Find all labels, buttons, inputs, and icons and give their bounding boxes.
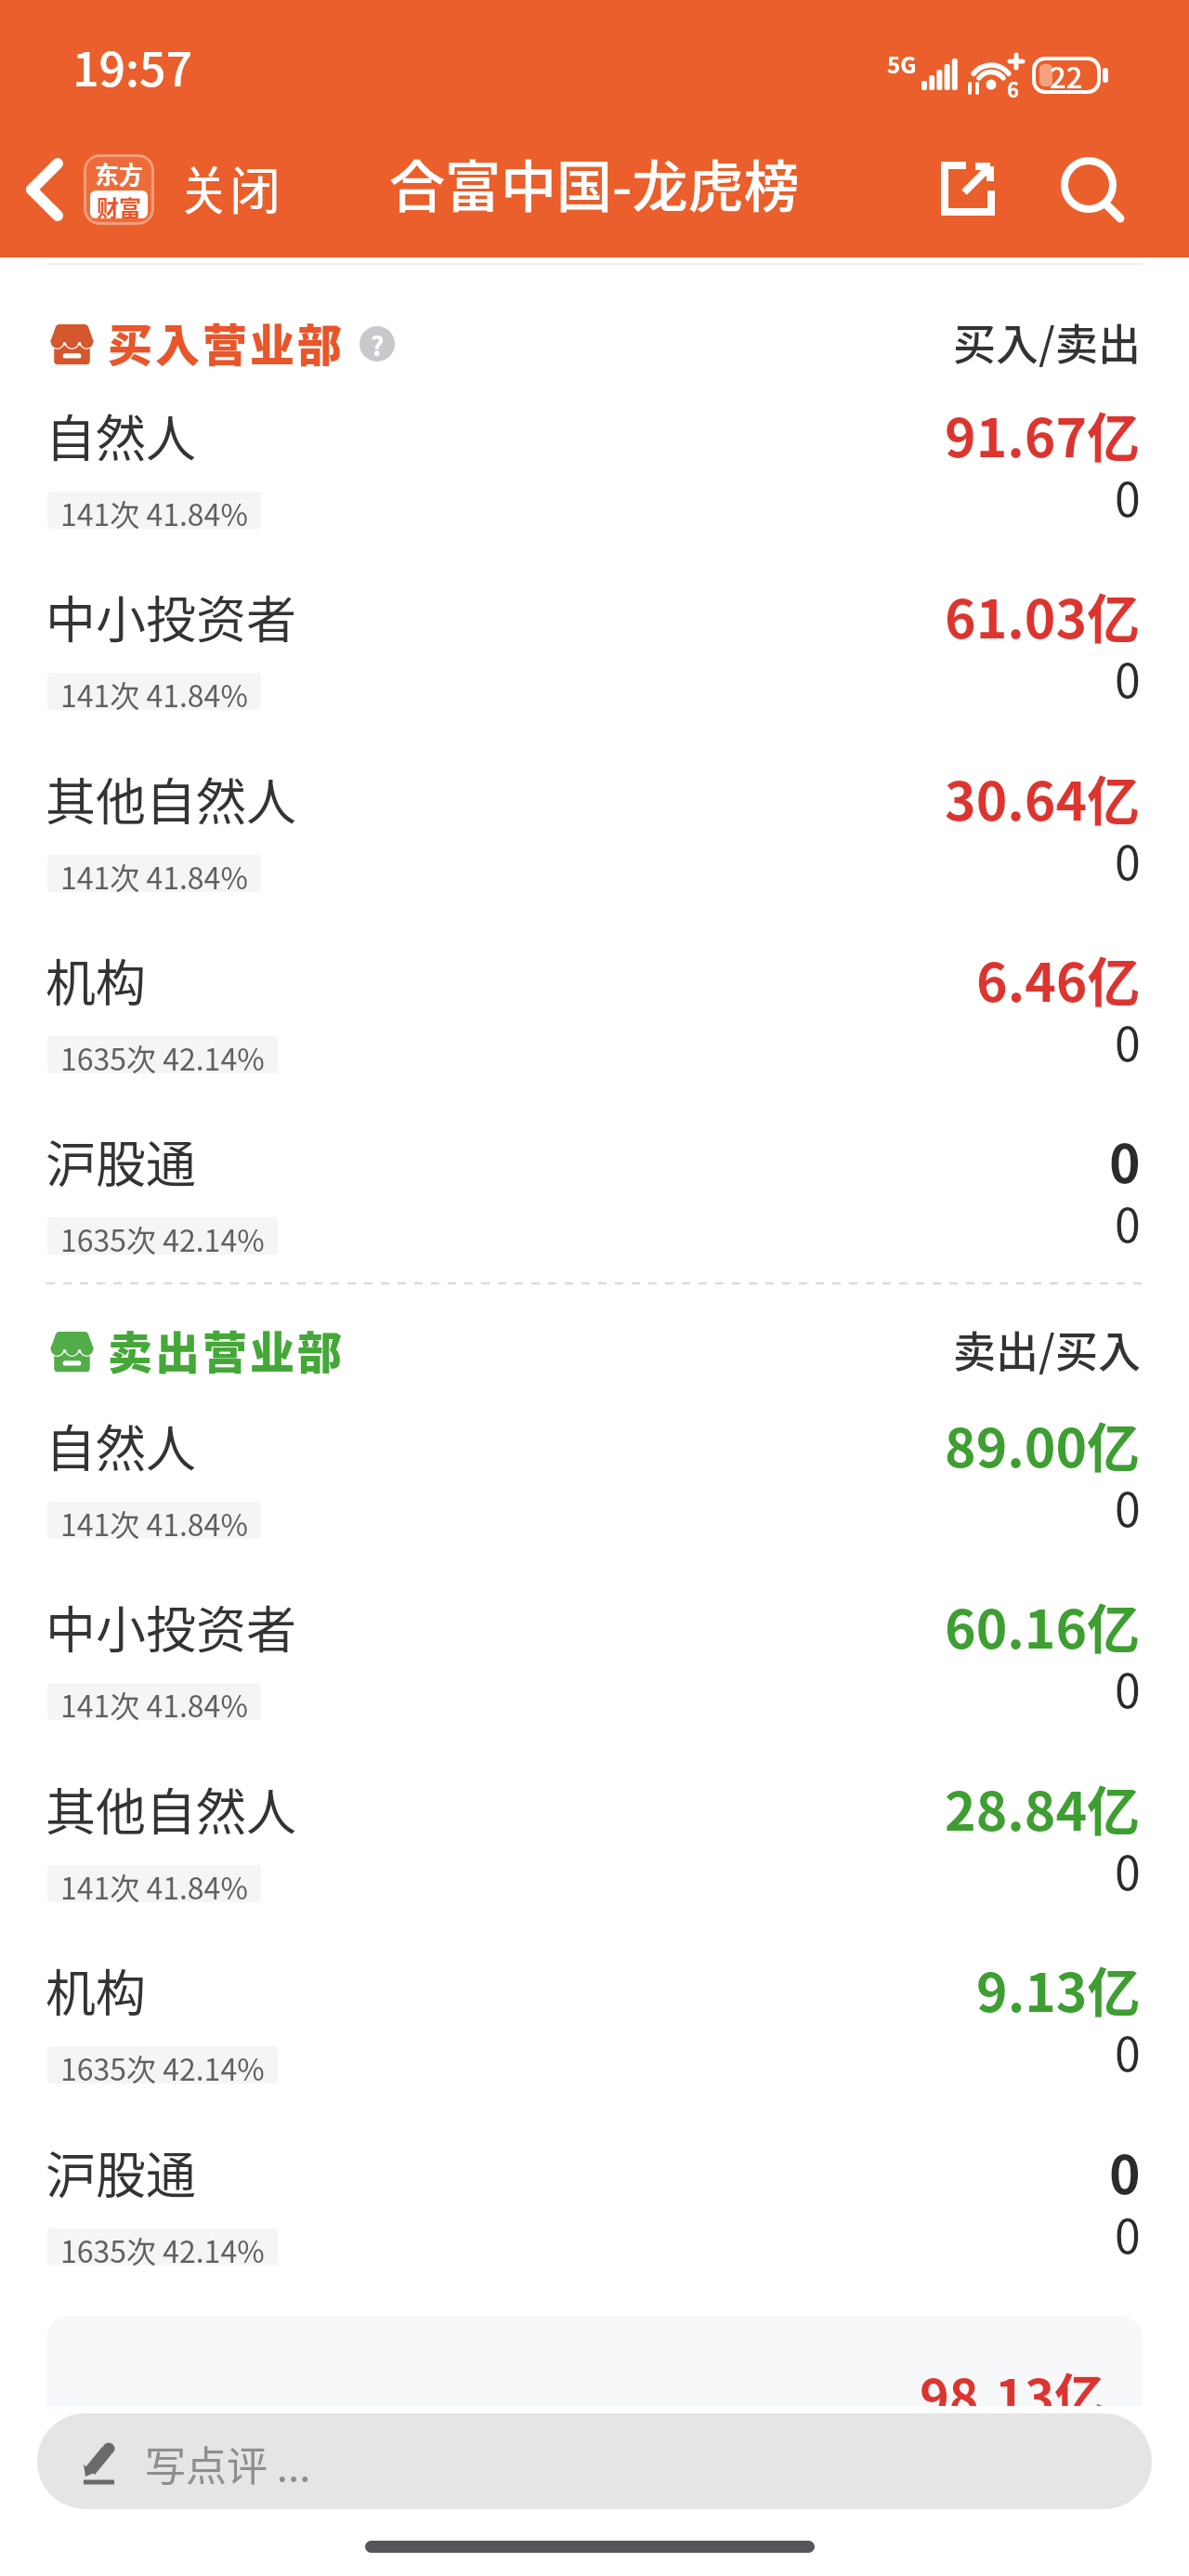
staticText: 0	[1115, 826, 1141, 893]
button[interactable]	[0, 1121, 1189, 1279]
staticText: 6.46亿	[976, 940, 1141, 1018]
staticText: 合富中国-龙虎榜	[389, 142, 800, 223]
staticText: 89.00亿	[945, 1406, 1141, 1483]
button[interactable]	[0, 395, 1189, 553]
button[interactable]	[0, 1768, 1189, 1926]
staticText: 141次 41.84%	[60, 1865, 248, 1902]
staticText: 61.03亿	[945, 577, 1141, 654]
staticText: 0	[1115, 463, 1141, 530]
staticText: 30.64亿	[945, 759, 1141, 836]
staticText: 19:57	[72, 33, 192, 99]
staticText: 5G	[887, 47, 917, 80]
button[interactable]	[0, 758, 1189, 916]
staticText: 卖出营业部	[108, 1317, 346, 1382]
staticText: 0	[1115, 2200, 1141, 2267]
staticText: 沪股通	[46, 1124, 196, 1197]
button[interactable]	[37, 2413, 1152, 2509]
staticText: 91.67亿	[945, 396, 1141, 473]
staticText: 0	[1115, 644, 1141, 711]
button[interactable]	[0, 1405, 1189, 1563]
staticText: 28.84亿	[945, 1769, 1141, 1847]
staticText: 141次 41.84%	[60, 855, 248, 892]
staticText: 0	[1109, 1122, 1141, 1199]
staticText: 0	[1115, 1189, 1141, 1255]
staticText: 141次 41.84%	[60, 1502, 248, 1539]
button[interactable]	[0, 1950, 1189, 2108]
staticText: ?	[371, 326, 385, 361]
button[interactable]: 关闭	[167, 145, 293, 229]
button[interactable]: ?	[359, 326, 395, 361]
button[interactable]: 东方	[84, 154, 154, 225]
staticText: 9.13亿	[976, 1951, 1141, 2028]
button[interactable]	[0, 2132, 1189, 2290]
staticText: 1635次 42.14%	[60, 2228, 265, 2266]
staticText: 其他自然人	[46, 1772, 296, 1845]
staticText: 自然人	[46, 399, 196, 471]
staticText: 141次 41.84%	[60, 492, 248, 529]
staticText: 22	[1050, 55, 1083, 97]
staticText: 中小投资者	[46, 580, 296, 652]
staticText: 买入/卖出	[953, 310, 1141, 373]
staticText: 卖出/买入	[953, 1318, 1141, 1380]
staticText: 0	[1115, 2017, 1141, 2084]
staticText: 141次 41.84%	[60, 1683, 248, 1720]
staticText: 0	[1115, 1007, 1141, 1074]
staticText: 60.16亿	[945, 1587, 1141, 1664]
button[interactable]	[0, 576, 1189, 734]
staticText: 0	[1115, 1836, 1141, 1903]
staticText: 写点评 ...	[145, 2434, 311, 2493]
staticText: 141次 41.84%	[60, 673, 248, 710]
button[interactable]	[13, 149, 87, 232]
staticText: 机构	[46, 943, 146, 1016]
button[interactable]	[0, 1586, 1189, 1744]
staticText: 0	[1115, 1654, 1141, 1721]
staticText: 机构	[46, 1953, 146, 2026]
button[interactable]	[1052, 149, 1130, 227]
button[interactable]	[0, 940, 1189, 1097]
staticText: 98.13亿	[920, 2358, 1104, 2430]
staticText: 其他自然人	[46, 762, 296, 835]
staticText: 1635次 42.14%	[60, 2046, 265, 2083]
staticText: 6	[1007, 73, 1019, 103]
staticText: 买入营业部	[108, 309, 346, 375]
staticText: 0	[1115, 1473, 1141, 1540]
staticText: 0	[1109, 2133, 1141, 2210]
staticText: 关闭	[178, 150, 281, 224]
staticText: 1635次 42.14%	[60, 1036, 265, 1073]
staticText: 财富	[97, 191, 141, 218]
staticText: 自然人	[46, 1409, 196, 1481]
staticText: 东方	[95, 156, 144, 191]
staticText: 沪股通	[46, 2136, 196, 2208]
staticText: 中小投资者	[46, 1590, 296, 1663]
button[interactable]	[929, 149, 1007, 227]
staticText: 1635次 42.14%	[60, 1217, 265, 1255]
